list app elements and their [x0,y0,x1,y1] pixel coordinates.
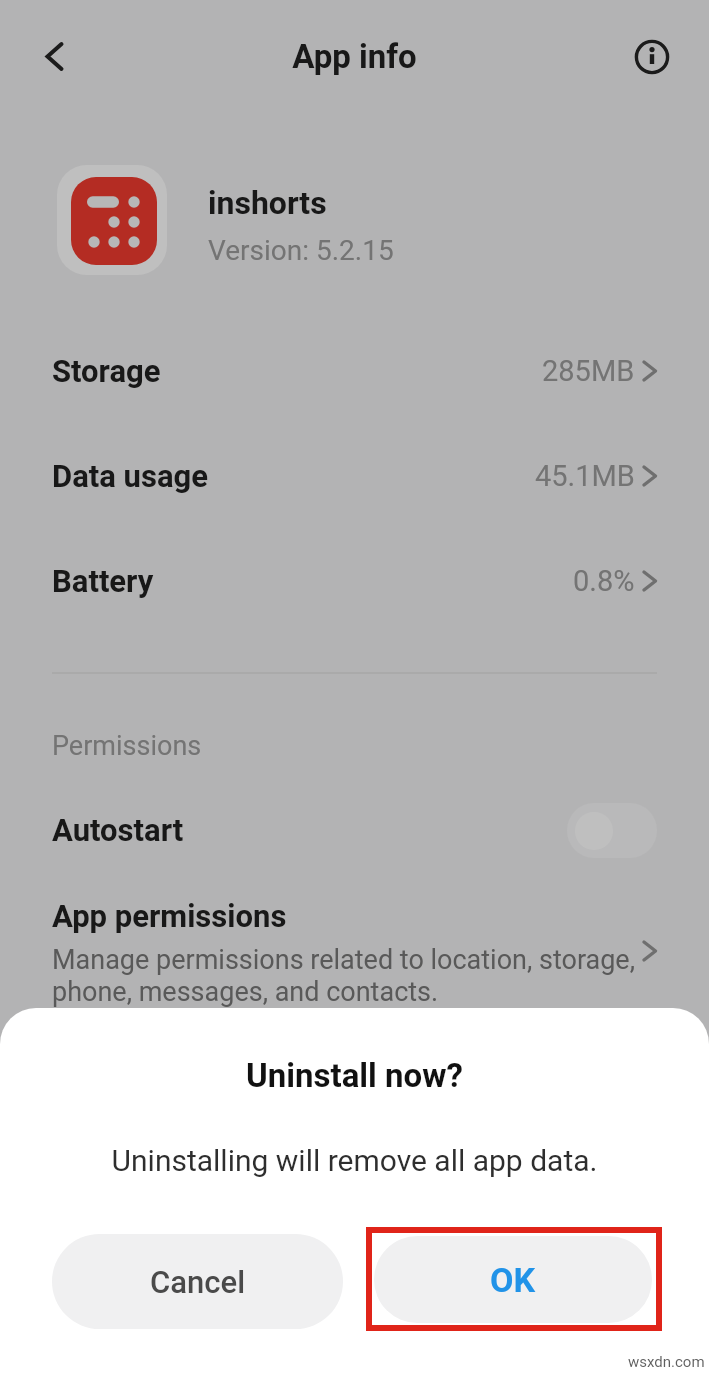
staticText: wsxdn.com [628,1353,705,1371]
staticText: Uninstall now? [0,1056,709,1095]
staticText: Autostart [52,812,184,848]
staticText: App info [0,37,709,76]
staticText: Version: 5.2.15 [208,234,394,267]
button[interactable]: Autostart [52,799,657,861]
staticText: Storage [52,353,161,389]
staticText: Battery [52,563,154,599]
staticText: 0.8% [573,564,635,598]
staticText: Uninstalling will remove all app data. [0,1143,709,1178]
button[interactable]: Data usage [52,445,659,507]
button[interactable]: Storage [52,340,659,402]
staticText: 285MB [542,354,635,388]
button[interactable] [0,886,709,1008]
button[interactable]: Battery [52,550,659,612]
staticText: Data usage [52,458,208,494]
staticText: inshorts [208,184,327,222]
button[interactable]: OK [374,1236,652,1323]
staticText: 45.1MB [535,459,635,493]
button[interactable]: Cancel [52,1234,343,1329]
staticText: App permissions [52,898,287,934]
staticText: Cancel [150,1264,246,1300]
button[interactable] [43,42,67,72]
staticText: Permissions [52,730,202,762]
staticText: OK [490,1260,536,1300]
button[interactable] [634,39,670,75]
staticText: Manage permissions related to location, … [52,944,635,1008]
